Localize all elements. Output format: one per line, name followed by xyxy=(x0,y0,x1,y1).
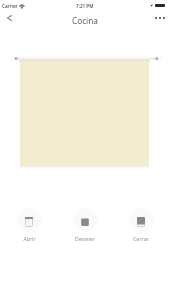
staticText: Cocina xyxy=(72,15,98,26)
button[interactable]: Detener xyxy=(73,208,97,242)
staticText: Cerrar xyxy=(133,235,149,242)
staticText: 7:21 PM xyxy=(76,3,94,9)
button[interactable]: More options xyxy=(151,8,169,26)
button[interactable]: Abrir xyxy=(17,208,41,242)
staticText: Abrir xyxy=(23,235,36,242)
button[interactable]: Back xyxy=(0,9,18,27)
staticText: Detener xyxy=(75,235,95,242)
staticText: Carrier xyxy=(2,3,18,9)
button[interactable]: Cerrar xyxy=(129,208,153,242)
